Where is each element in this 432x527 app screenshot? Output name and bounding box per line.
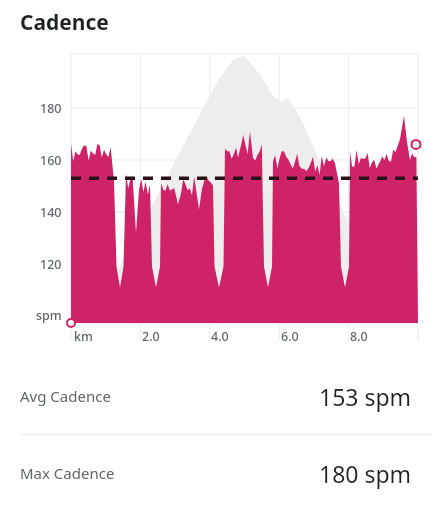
staticText: Cadence (20, 8, 109, 37)
staticText: Max Cadence (20, 463, 115, 483)
staticText: 4.0 (211, 328, 229, 345)
staticText: 8.0 (350, 328, 368, 345)
button[interactable]: Avg Cadence (0, 358, 432, 434)
button[interactable]: Max Cadence (0, 435, 432, 511)
staticText: 2.0 (142, 328, 160, 345)
staticText: 180 spm (319, 458, 412, 489)
staticText: 160 (40, 152, 62, 169)
staticText: Avg Cadence (20, 386, 111, 406)
staticText: spm (36, 307, 62, 324)
staticText: 140 (40, 204, 62, 221)
staticText: 6.0 (281, 328, 299, 345)
staticText: 180 (40, 100, 62, 117)
staticText: 120 (40, 256, 62, 273)
staticText: km (74, 328, 93, 345)
staticText: 153 spm (319, 381, 412, 412)
